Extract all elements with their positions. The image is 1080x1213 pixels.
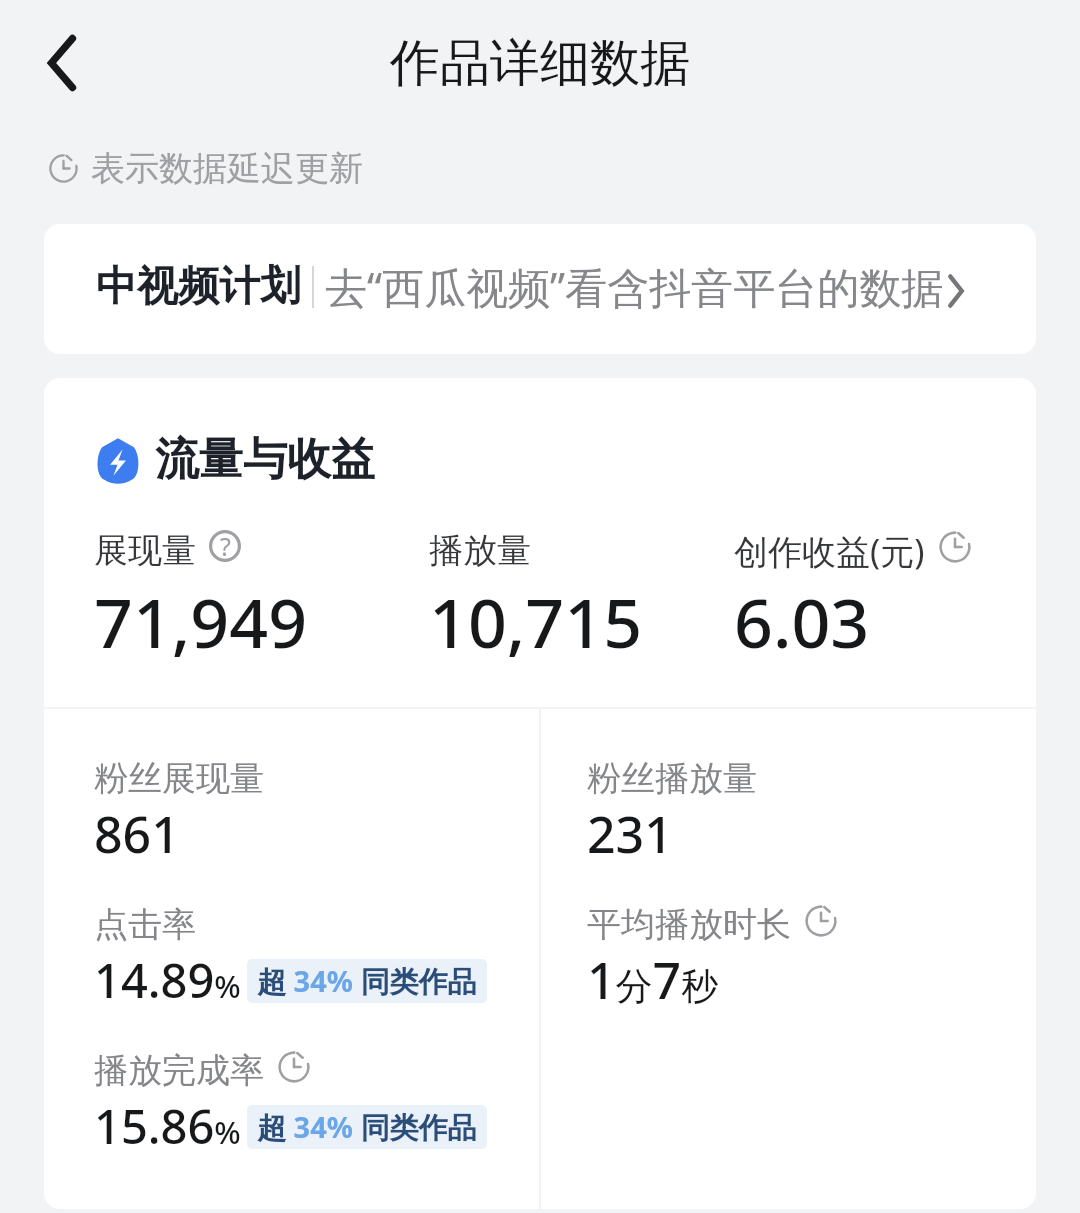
button[interactable]: 中视频计划	[44, 224, 1036, 354]
staticText: 创作收益(元)	[734, 528, 925, 574]
staticText: 展现量	[94, 529, 196, 572]
staticText: 表示数据延迟更新	[91, 147, 363, 190]
staticText: 播放量	[429, 529, 531, 572]
staticText: 231	[587, 800, 673, 868]
staticText: 中视频计划	[96, 261, 301, 313]
staticText: 去“西瓜视频”看含抖音平台的数据	[325, 258, 944, 315]
staticText: 15.86%	[94, 1094, 241, 1158]
staticText: 作品详细数据	[390, 32, 690, 95]
staticText: 14.89%	[94, 948, 241, 1012]
staticText: 超 34% 同类作品	[257, 961, 477, 1001]
staticText: 71,949	[94, 575, 308, 668]
staticText: 点击率	[94, 903, 196, 946]
staticText: 粉丝展现量	[94, 757, 264, 800]
staticText: 流量与收益	[155, 432, 375, 487]
button[interactable]: Back	[24, 25, 100, 101]
staticText: 861	[94, 800, 180, 868]
staticText: 6.03	[734, 575, 870, 668]
staticText: 播放完成率	[94, 1049, 264, 1092]
staticText: 1分7秒	[587, 946, 719, 1014]
staticText: 10,715	[429, 575, 643, 668]
staticText: 粉丝播放量	[587, 757, 757, 800]
button[interactable]: What is impressions?	[209, 530, 241, 562]
staticText: 平均播放时长	[587, 903, 791, 946]
staticText: 超 34% 同类作品	[257, 1107, 477, 1147]
staticText: ?	[220, 529, 231, 561]
